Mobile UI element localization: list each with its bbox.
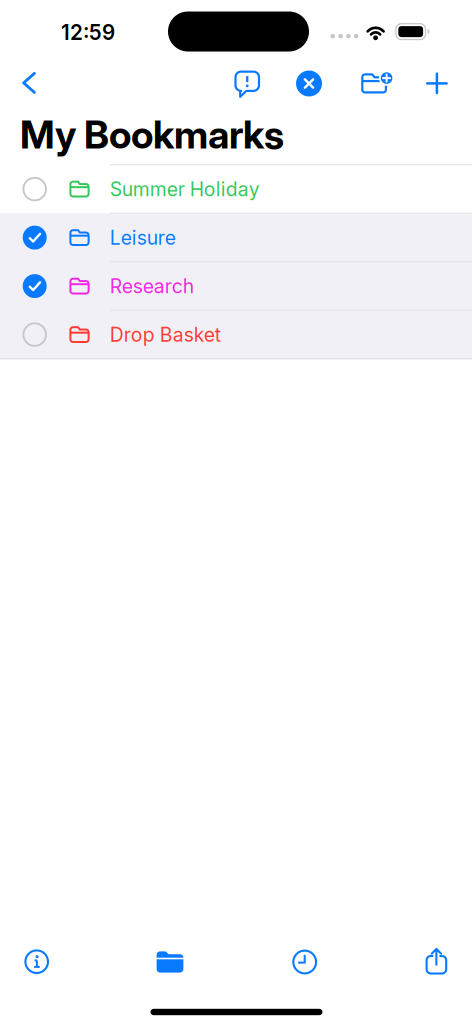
staticText: Drop Basket: [110, 323, 221, 346]
button[interactable]: Drop Basket: [0, 310, 472, 359]
button[interactable]: Research: [0, 262, 472, 310]
button[interactable]: Add: [421, 65, 453, 101]
staticText: 12:59: [61, 20, 115, 45]
button[interactable]: Report: [230, 66, 264, 102]
button[interactable]: Info: [15, 940, 59, 984]
button[interactable]: New Folder: [356, 65, 396, 101]
staticText: My Bookmarks: [20, 111, 284, 158]
staticText: Research: [110, 274, 194, 298]
staticText: Summer Holiday: [110, 177, 260, 201]
button[interactable]: Leisure: [0, 213, 472, 262]
button[interactable]: Folders: [148, 940, 192, 984]
button[interactable]: Summer Holiday: [0, 165, 472, 213]
button[interactable]: Recent: [283, 940, 327, 984]
button[interactable]: Back: [14, 65, 44, 101]
staticText: Leisure: [110, 226, 176, 249]
button[interactable]: Close: [292, 65, 326, 101]
button[interactable]: Share: [414, 939, 458, 983]
